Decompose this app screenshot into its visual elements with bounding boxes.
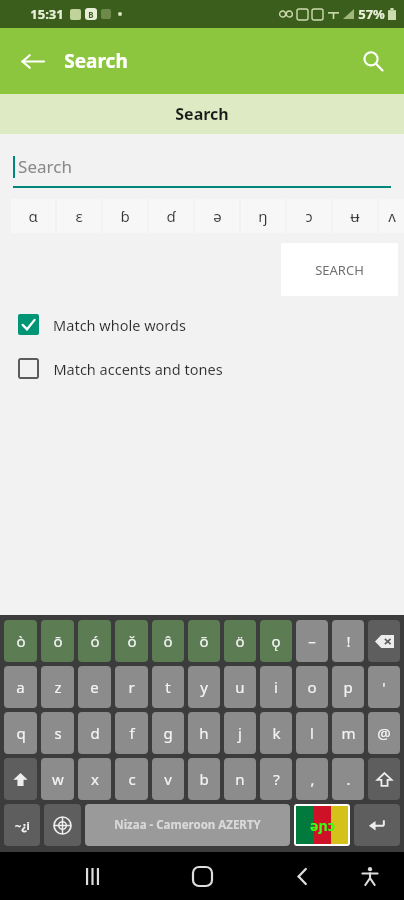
staticText: @	[377, 723, 391, 743]
button[interactable]: o	[296, 666, 328, 708]
staticText: ɗ	[166, 206, 176, 226]
button[interactable]: Shift lock	[368, 758, 400, 800]
button[interactable]: s	[41, 712, 74, 754]
staticText: B	[88, 9, 94, 20]
button[interactable]: –	[296, 620, 328, 662]
staticText: i	[274, 677, 278, 697]
button[interactable]: Enter	[354, 804, 400, 846]
button[interactable]: Home	[181, 855, 223, 897]
button[interactable]: z	[41, 666, 74, 708]
staticText: '	[382, 677, 386, 697]
button[interactable]: .	[332, 758, 364, 800]
button[interactable]: Back	[282, 856, 322, 896]
button[interactable]: g	[152, 712, 184, 754]
staticText: ʉ	[350, 206, 360, 226]
staticText: m	[341, 723, 356, 743]
button[interactable]: k	[260, 712, 292, 754]
button[interactable]: Nizaa keyboard	[296, 806, 348, 844]
button[interactable]: ǫ	[260, 620, 292, 662]
button[interactable]: i	[260, 666, 292, 708]
button[interactable]: ö	[224, 620, 256, 662]
staticText: 15:31	[30, 5, 64, 23]
button[interactable]: q	[4, 712, 37, 754]
button[interactable]: ʌ	[379, 199, 404, 233]
staticText: u	[235, 677, 245, 697]
staticText: n	[235, 769, 245, 789]
button[interactable]: Accessibility	[350, 856, 390, 896]
button[interactable]: ?	[260, 758, 292, 800]
button[interactable]: ,	[296, 758, 328, 800]
button[interactable]: Space	[85, 804, 290, 846]
staticText: b	[199, 769, 209, 789]
button[interactable]: m	[332, 712, 364, 754]
button[interactable]: Back	[10, 39, 54, 83]
button[interactable]: ō	[41, 620, 74, 662]
button[interactable]: r	[115, 666, 148, 708]
button[interactable]: h	[188, 712, 220, 754]
staticText: ǝɲɔ	[310, 816, 335, 835]
button[interactable]: ò	[4, 620, 37, 662]
staticText: f	[129, 723, 135, 743]
button[interactable]: ɓ	[103, 199, 147, 233]
button[interactable]: d	[78, 712, 111, 754]
button[interactable]: '	[368, 666, 400, 708]
button[interactable]: a	[4, 666, 37, 708]
button[interactable]: ɛ	[57, 199, 101, 233]
staticText: ɑ	[28, 206, 38, 226]
button[interactable]: Recents	[72, 856, 112, 896]
button[interactable]: Search	[351, 39, 395, 83]
button[interactable]: y	[188, 666, 220, 708]
button[interactable]: b	[188, 758, 220, 800]
staticText: ʌ	[388, 206, 396, 226]
button[interactable]: Change language	[44, 804, 81, 846]
staticText: a	[16, 677, 25, 697]
staticText: q	[16, 723, 26, 743]
button[interactable]: SEARCH	[281, 243, 398, 296]
staticText: ö	[235, 631, 245, 651]
button[interactable]: Match accents and tones	[18, 358, 404, 379]
staticText: j	[238, 723, 242, 743]
button[interactable]: Match whole words	[18, 314, 404, 335]
button[interactable]: v	[152, 758, 184, 800]
staticText: .	[346, 769, 351, 789]
button[interactable]: !	[332, 620, 364, 662]
button[interactable]: j	[224, 712, 256, 754]
staticText: ó	[90, 631, 100, 651]
staticText: w	[52, 769, 64, 789]
staticText: Match whole words	[53, 315, 186, 335]
button[interactable]: Backspace	[368, 620, 400, 662]
button[interactable]: ŏ	[115, 620, 148, 662]
button[interactable]: ó	[78, 620, 111, 662]
staticText: e	[90, 677, 99, 697]
button[interactable]: ə	[195, 199, 239, 233]
button[interactable]: ɗ	[149, 199, 193, 233]
button[interactable]: ŋ	[241, 199, 285, 233]
button[interactable]: f	[115, 712, 148, 754]
button[interactable]: l	[296, 712, 328, 754]
button[interactable]: ʉ	[333, 199, 377, 233]
button[interactable]: x	[78, 758, 111, 800]
staticText: p	[343, 677, 353, 697]
button[interactable]: õ	[188, 620, 220, 662]
staticText: ,	[310, 769, 315, 789]
button[interactable]: Shift	[4, 758, 37, 800]
button[interactable]: ô	[152, 620, 184, 662]
button[interactable]: ɑ	[11, 199, 55, 233]
button[interactable]: c	[115, 758, 148, 800]
staticText: h	[199, 723, 209, 743]
button[interactable]: p	[332, 666, 364, 708]
staticText: l	[310, 723, 314, 743]
button[interactable]: Symbols	[4, 804, 40, 846]
staticText: Search	[18, 155, 72, 178]
button[interactable]: @	[368, 712, 400, 754]
button[interactable]: u	[224, 666, 256, 708]
staticText: !	[346, 631, 351, 651]
button[interactable]: n	[224, 758, 256, 800]
staticText: x	[91, 769, 99, 789]
button[interactable]: t	[152, 666, 184, 708]
button[interactable]: w	[41, 758, 74, 800]
staticText: ô	[163, 631, 173, 651]
staticText: d	[90, 723, 100, 743]
button[interactable]: e	[78, 666, 111, 708]
button[interactable]: ɔ	[287, 199, 331, 233]
